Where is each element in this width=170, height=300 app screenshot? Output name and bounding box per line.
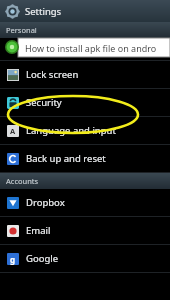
button[interactable]: Settings xyxy=(0,0,170,22)
button[interactable]: g xyxy=(0,245,170,272)
staticText: Accounts xyxy=(6,176,39,186)
staticText: Email xyxy=(26,224,51,237)
button[interactable]: Security xyxy=(0,89,170,116)
button[interactable]: How to install apk file on andro xyxy=(18,38,170,57)
staticText: Back up and reset xyxy=(26,152,106,165)
staticText: Language and input xyxy=(26,124,116,137)
staticText: How to install apk file on andro xyxy=(25,42,157,54)
button[interactable]: Email xyxy=(0,217,170,244)
staticText: Personal xyxy=(6,25,37,35)
staticText: A xyxy=(10,126,16,136)
button[interactable]: A xyxy=(0,117,170,144)
staticText: Dropbox xyxy=(26,196,65,209)
other: Settings xyxy=(6,5,19,18)
staticText: Settings xyxy=(25,5,62,18)
staticText: Security xyxy=(26,96,62,109)
button[interactable]: Lock screen xyxy=(0,61,170,88)
staticText: Google xyxy=(26,252,59,265)
button[interactable]: Dropbox xyxy=(0,189,170,216)
staticText: Lock screen xyxy=(26,68,79,81)
button[interactable]: Back up and reset xyxy=(0,145,170,172)
other: App icon xyxy=(5,40,19,54)
staticText: g xyxy=(10,254,16,265)
